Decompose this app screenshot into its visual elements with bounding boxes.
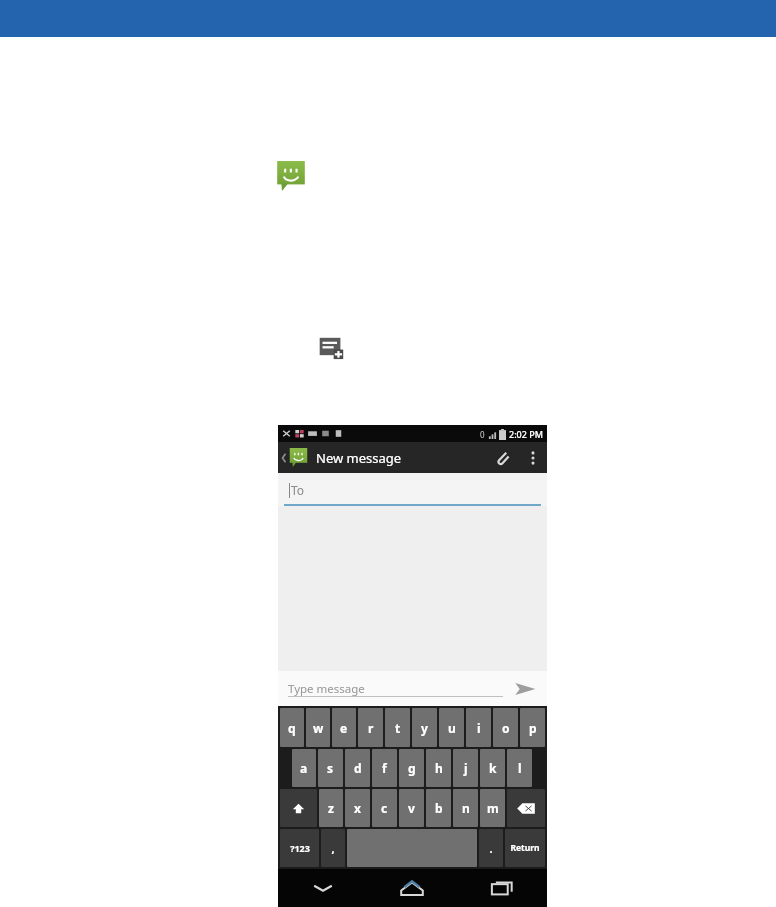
button[interactable]: x: [345, 789, 370, 827]
button[interactable]: k: [480, 749, 505, 787]
staticText: n: [462, 800, 470, 816]
button[interactable]: Attach: [485, 442, 519, 473]
button[interactable]: y: [412, 708, 437, 747]
staticText: q: [288, 720, 296, 736]
staticText: w: [313, 720, 324, 736]
staticText: a: [300, 760, 308, 776]
button[interactable]: Send: [503, 671, 547, 706]
staticText: ,: [331, 841, 335, 856]
staticText: v: [408, 800, 415, 816]
staticText: .: [489, 841, 493, 856]
button[interactable]: h: [426, 749, 451, 787]
button[interactable]: w: [306, 708, 330, 747]
button[interactable]: To: [278, 473, 547, 506]
button[interactable]: r: [358, 708, 383, 747]
staticText: m: [487, 800, 499, 816]
button[interactable]: t: [385, 708, 410, 747]
button[interactable]: Shift: [280, 789, 317, 827]
button[interactable]: Backspace: [507, 789, 545, 827]
staticText: z: [328, 800, 334, 816]
button[interactable]: s: [318, 749, 343, 787]
button[interactable]: d: [345, 749, 370, 787]
button[interactable]: .: [479, 829, 503, 867]
button[interactable]: e: [332, 708, 356, 747]
button[interactable]: n: [453, 789, 478, 827]
staticText: d: [354, 760, 362, 776]
staticText: u: [448, 720, 456, 736]
staticText: c: [381, 800, 388, 816]
button[interactable]: j: [453, 749, 478, 787]
staticText: e: [340, 720, 348, 736]
button[interactable]: f: [372, 749, 397, 787]
staticText: s: [327, 760, 334, 776]
button[interactable]: ?123: [280, 829, 319, 867]
button[interactable]: o: [493, 708, 518, 747]
staticText: ?123: [290, 842, 310, 854]
staticText: r: [368, 720, 374, 736]
button[interactable]: Recent apps: [457, 869, 547, 907]
button[interactable]: z: [319, 789, 343, 827]
button[interactable]: Type message: [288, 681, 503, 697]
staticText: g: [408, 760, 416, 776]
staticText: x: [354, 800, 361, 816]
staticText: f: [382, 760, 387, 776]
button[interactable]: l: [507, 749, 532, 787]
button[interactable]: g: [399, 749, 424, 787]
staticText: To: [291, 482, 305, 498]
button[interactable]: b: [426, 789, 451, 827]
button[interactable]: q: [280, 708, 304, 747]
staticText: o: [502, 720, 510, 736]
staticText: p: [529, 720, 537, 736]
button[interactable]: i: [466, 708, 491, 747]
button[interactable]: Home: [367, 869, 457, 907]
staticText: k: [489, 760, 497, 776]
staticText: 0: [480, 429, 485, 440]
staticText: l: [518, 760, 522, 776]
staticText: b: [435, 800, 443, 816]
button[interactable]: v: [399, 789, 424, 827]
staticText: t: [395, 720, 401, 736]
staticText: Return: [510, 842, 540, 854]
button[interactable]: Return: [505, 829, 545, 867]
staticText: 2:02 PM: [509, 428, 543, 440]
staticText: New message: [316, 449, 402, 467]
button[interactable]: [278, 448, 312, 467]
button[interactable]: p: [520, 708, 545, 747]
staticText: h: [435, 760, 443, 776]
button[interactable]: ,: [321, 829, 345, 867]
staticText: Type message: [288, 681, 365, 697]
button[interactable]: More options: [519, 444, 547, 472]
button[interactable]: u: [439, 708, 464, 747]
button[interactable]: c: [372, 789, 397, 827]
staticText: i: [477, 720, 481, 736]
staticText: j: [464, 760, 468, 776]
staticText: y: [421, 720, 428, 736]
button[interactable]: Hide keyboard: [278, 869, 367, 907]
button[interactable]: a: [292, 749, 316, 787]
button[interactable]: m: [480, 789, 505, 827]
